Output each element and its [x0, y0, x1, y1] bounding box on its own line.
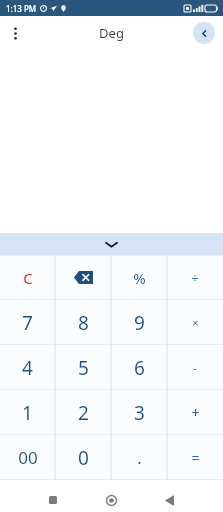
staticText: 7	[22, 310, 33, 336]
staticText: +	[191, 403, 200, 422]
button[interactable]: 2	[55, 390, 111, 435]
button[interactable]: +	[167, 390, 223, 435]
button[interactable]: ×	[167, 300, 223, 345]
button[interactable]: C	[0, 255, 55, 300]
button[interactable]: Collapse keypad	[0, 233, 223, 255]
button[interactable]: %	[111, 255, 167, 300]
button[interactable]: 3	[111, 390, 167, 435]
staticText: 9	[134, 310, 145, 336]
button[interactable]: 6	[111, 345, 167, 390]
staticText: 5	[78, 355, 89, 381]
staticText: 1	[22, 400, 33, 426]
staticText: 0	[78, 445, 89, 471]
staticText: 2	[78, 400, 89, 426]
staticText: ×	[192, 315, 199, 330]
staticText: C	[23, 268, 33, 288]
staticText: 3	[134, 400, 145, 426]
staticText: .	[137, 446, 142, 469]
button[interactable]: 8	[55, 300, 111, 345]
staticText: 00	[18, 446, 38, 469]
button[interactable]: 0	[55, 435, 111, 480]
button[interactable]: Back	[157, 488, 181, 512]
button[interactable]: ÷	[167, 255, 223, 300]
staticText: 8	[78, 310, 89, 336]
button[interactable]: .	[111, 435, 167, 480]
staticText: =	[191, 448, 200, 467]
button[interactable]: More options	[0, 18, 30, 48]
button[interactable]: 4	[0, 345, 55, 390]
staticText: 4	[22, 355, 33, 381]
button[interactable]: 00	[0, 435, 55, 480]
button[interactable]: -	[167, 345, 223, 390]
staticText: 1:13 PM	[6, 3, 37, 14]
staticText: %	[133, 268, 146, 288]
staticText: ÷	[191, 269, 199, 287]
button[interactable]: 9	[111, 300, 167, 345]
staticText: Deg	[99, 24, 124, 42]
button[interactable]: =	[167, 435, 223, 480]
staticText: 6	[134, 355, 145, 381]
button[interactable]: Recent apps	[41, 488, 65, 512]
button[interactable]: Home	[99, 488, 123, 512]
button[interactable]: 1	[0, 390, 55, 435]
button[interactable]: 5	[55, 345, 111, 390]
button[interactable]: Back	[193, 22, 215, 44]
button[interactable]: Backspace	[55, 255, 111, 300]
button[interactable]: 7	[0, 300, 55, 345]
staticText: -	[193, 360, 197, 375]
